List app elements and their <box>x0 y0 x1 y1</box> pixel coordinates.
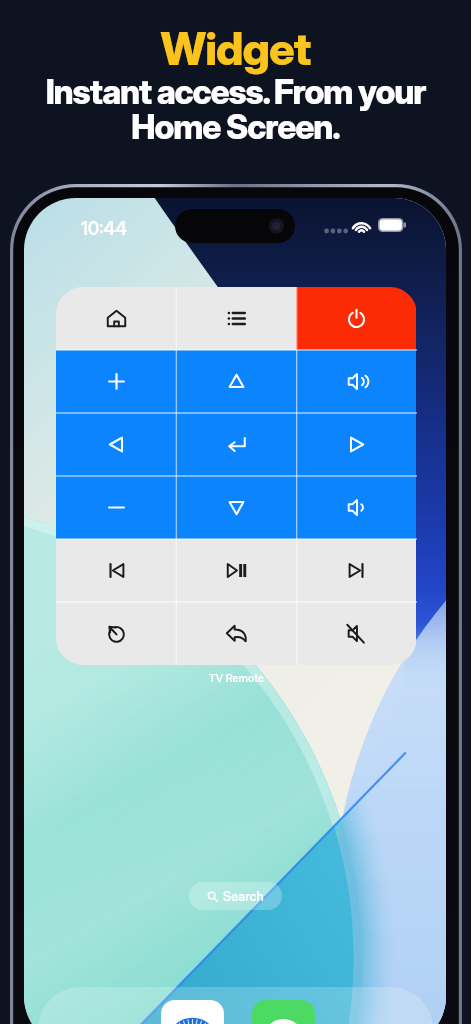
button[interactable]: Menu <box>176 287 296 350</box>
button[interactable]: Volume up <box>296 350 416 413</box>
button[interactable]: Right <box>296 413 416 476</box>
button[interactable]: Play pause <box>176 539 296 602</box>
button[interactable]: Enter <box>176 413 296 476</box>
staticText: Search <box>223 888 264 904</box>
button[interactable]: Channel down <box>56 476 176 539</box>
button[interactable]: Previous <box>56 539 176 602</box>
button[interactable]: Next <box>296 539 416 602</box>
button[interactable]: Mute <box>296 602 416 665</box>
staticText: 10:44 <box>81 218 127 240</box>
button[interactable]: Up <box>176 350 296 413</box>
staticText: Instant access. From your Home Screen. <box>0 72 471 147</box>
button[interactable]: Power <box>296 287 416 350</box>
button[interactable]: Power cycle <box>56 602 176 665</box>
staticText: Widget <box>0 21 471 75</box>
button[interactable]: Back <box>176 602 296 665</box>
button[interactable]: Volume down <box>296 476 416 539</box>
button[interactable]: Home <box>56 287 176 350</box>
button[interactable]: Down <box>176 476 296 539</box>
staticText: TV Remote <box>209 671 264 684</box>
button[interactable]: Channel up <box>56 350 176 413</box>
button[interactable]: Left <box>56 413 176 476</box>
button[interactable]: Search <box>189 882 282 910</box>
